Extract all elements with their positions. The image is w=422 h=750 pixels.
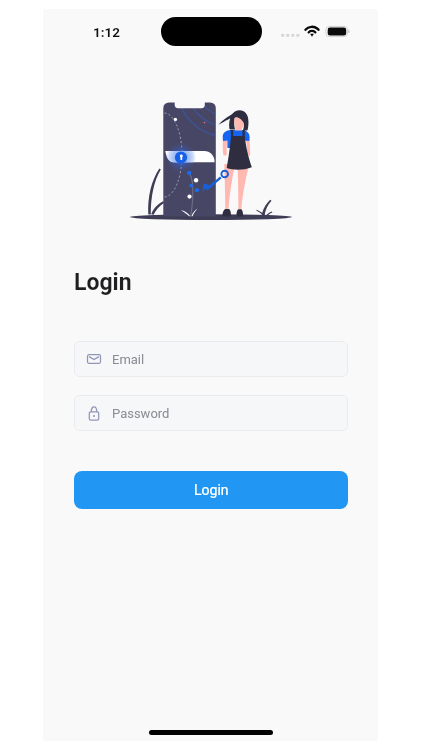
button[interactable]: Login xyxy=(74,471,348,509)
button[interactable]: Email xyxy=(74,341,348,377)
staticText: Login xyxy=(194,482,229,498)
staticText: Password xyxy=(112,406,170,421)
staticText: Login xyxy=(74,269,132,296)
staticText: Email xyxy=(112,352,145,367)
button[interactable]: Password xyxy=(74,395,348,431)
staticText: 1:12 xyxy=(93,24,121,40)
